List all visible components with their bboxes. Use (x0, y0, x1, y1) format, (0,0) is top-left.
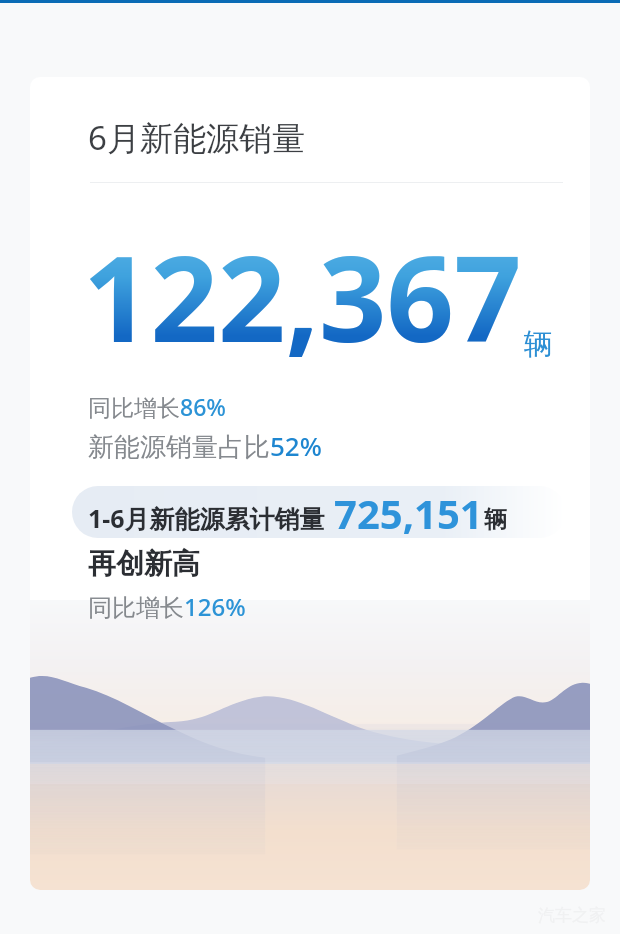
staticText: 再创新高 (88, 546, 200, 581)
button[interactable]: 6月新能源销量 (30, 77, 590, 890)
staticText: 1-6月新能源累计销量 (88, 501, 325, 535)
staticText: 同比增长126% (88, 590, 246, 623)
staticText: 同比增长86% (88, 391, 226, 422)
staticText: 6月新能源销量 (88, 115, 305, 160)
staticText: 725,151 (334, 486, 483, 538)
staticText: 122,367 (83, 216, 522, 377)
staticText: 辆 (524, 326, 553, 363)
button[interactable]: 1-6月新能源累计销量 (72, 486, 565, 538)
staticText: 辆 (484, 505, 507, 534)
staticText: 新能源销量占比52% (88, 428, 322, 464)
